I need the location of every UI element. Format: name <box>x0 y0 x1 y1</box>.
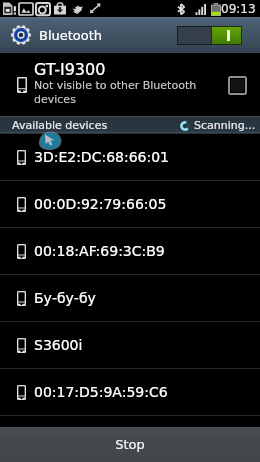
staticText: Bluetooth <box>39 28 103 43</box>
button[interactable]: Bluetooth on <box>177 26 242 45</box>
button[interactable]: 00:17:D5:9A:59:C6 <box>0 369 260 415</box>
staticText: Scanning... <box>194 119 256 132</box>
button[interactable]: 3D:E2:DC:68:66:01 <box>0 134 260 180</box>
staticText: Not visible to other Bluetooth devices <box>34 79 204 106</box>
button[interactable]: 00:0D:92:79:66:05 <box>0 181 260 227</box>
staticText: 09:13 <box>221 2 256 16</box>
staticText: 00:18:AF:69:3C:B9 <box>34 243 165 259</box>
staticText: Available devices <box>12 119 108 132</box>
button[interactable]: Stop <box>0 427 260 462</box>
button[interactable]: S3600i <box>0 322 260 368</box>
button[interactable]: Visible to other devices <box>227 75 247 95</box>
staticText: Бу-бу-бу <box>34 290 96 306</box>
button[interactable]: 00:18:AF:69:3C:B9 <box>0 228 260 274</box>
button[interactable]: Бу-бу-бу <box>0 275 260 321</box>
staticText: 00:0D:92:79:66:05 <box>34 196 167 212</box>
staticText: 3D:E2:DC:68:66:01 <box>34 149 170 165</box>
staticText: 00:17:D5:9A:59:C6 <box>34 384 168 400</box>
staticText: GT-I9300 <box>34 60 106 79</box>
button[interactable]: GT-I9300 <box>0 53 260 116</box>
staticText: S3600i <box>34 337 83 353</box>
staticText: Stop <box>115 437 145 452</box>
